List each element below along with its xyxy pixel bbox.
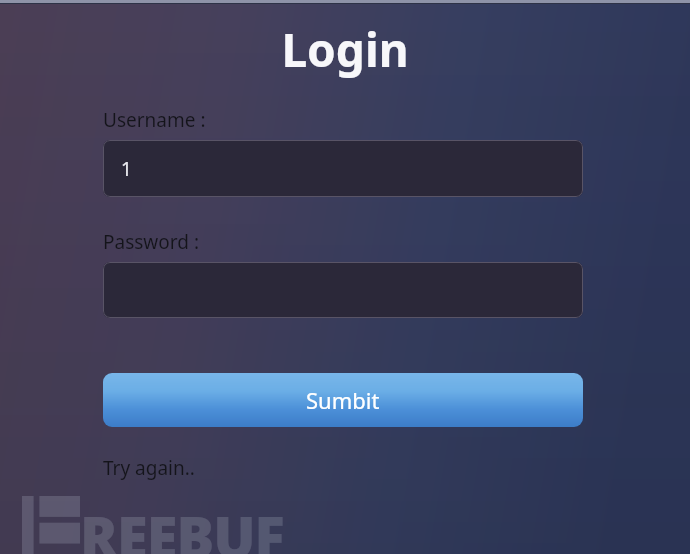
staticText: Password :: [103, 229, 199, 255]
button[interactable]: [103, 262, 583, 318]
staticText: Try again..: [103, 455, 195, 481]
staticText: REEBUF: [80, 498, 284, 554]
staticText: 1: [121, 156, 132, 182]
staticText: Sumbit: [306, 385, 380, 415]
button[interactable]: 1: [103, 140, 583, 197]
staticText: Login: [0, 18, 690, 81]
staticText: Username :: [103, 107, 206, 133]
button[interactable]: Sumbit: [103, 373, 583, 427]
